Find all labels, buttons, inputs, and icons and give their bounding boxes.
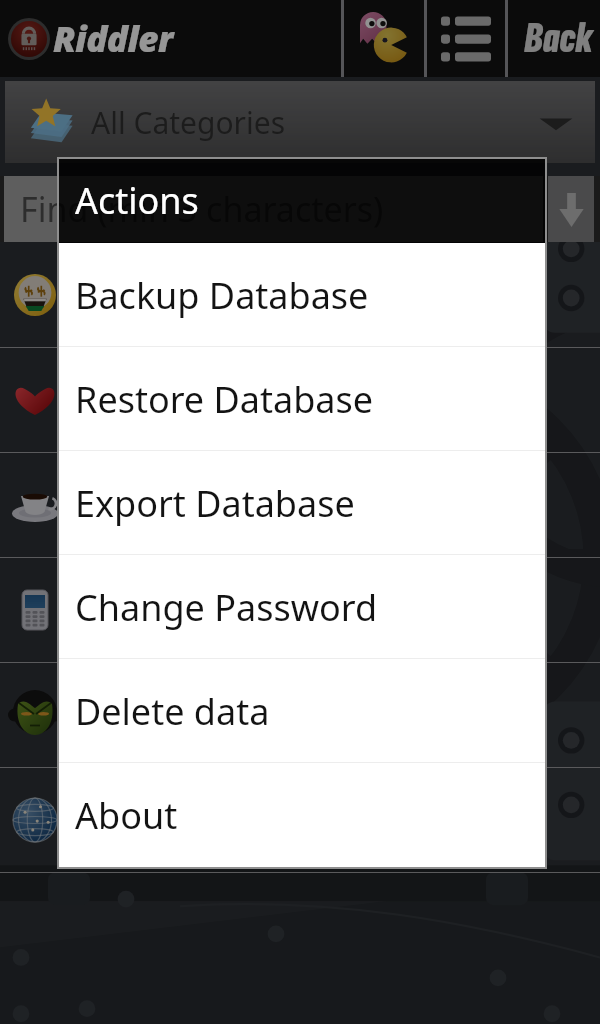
button[interactable]: [0, 243, 600, 347]
staticText: Export Database: [75, 479, 355, 528]
button[interactable]: Game: [344, 0, 424, 77]
staticText: Change Password: [75, 583, 378, 632]
button[interactable]: [0, 558, 600, 662]
button[interactable]: [0, 453, 600, 557]
staticText: Backup Database: [75, 271, 369, 320]
button[interactable]: Find (min 3 characters): [4, 176, 543, 242]
button[interactable]: Scroll to bottom: [548, 176, 594, 242]
button[interactable]: Delete data: [59, 659, 545, 763]
staticText: About: [75, 791, 178, 840]
button[interactable]: Restore Database: [59, 347, 545, 451]
button[interactable]: Backup Database: [59, 243, 545, 347]
button[interactable]: List view: [427, 0, 505, 77]
button[interactable]: About: [59, 763, 545, 867]
button[interactable]: [0, 348, 600, 452]
button[interactable]: Change Password: [59, 555, 545, 659]
staticText: All Categories: [91, 102, 286, 143]
button[interactable]: [0, 663, 600, 767]
button[interactable]: All Categories: [5, 81, 595, 163]
button[interactable]: Export Database: [59, 451, 545, 555]
staticText: Find (min 3 characters): [20, 186, 384, 232]
staticText: Actions: [75, 176, 199, 225]
staticText: Restore Database: [75, 375, 374, 424]
staticText: Back: [524, 13, 593, 65]
staticText: Riddler: [53, 15, 173, 63]
button[interactable]: Back: [508, 0, 600, 77]
staticText: Delete data: [75, 687, 270, 736]
button[interactable]: [0, 768, 600, 872]
